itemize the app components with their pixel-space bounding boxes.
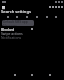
- button[interactable]: Action 4: [60, 5, 63, 8]
- button[interactable]: Tab 4: [45, 15, 49, 19]
- staticText: Search settings: [1, 9, 31, 15]
- staticText: Notifications: [1, 35, 22, 40]
- button[interactable]: Navigate up: [1, 5, 5, 9]
- button[interactable]: Tab 2: [25, 15, 29, 19]
- button[interactable]: Back: [12, 72, 18, 78]
- button[interactable]: Blocked: [1, 27, 15, 32]
- button[interactable]: Tab 3: [35, 15, 39, 19]
- button[interactable]: Action 0: [48, 5, 51, 8]
- button[interactable]: Swipe actions: [1, 31, 23, 36]
- staticText: Swipe actions: [1, 31, 23, 36]
- button[interactable]: Tab 0: [6, 15, 10, 19]
- button[interactable]: Action 3: [57, 5, 60, 8]
- button[interactable]: Action 1: [51, 5, 54, 8]
- button[interactable]: Default SMS app: [2, 20, 34, 26]
- staticText: Messages: [3, 24, 17, 26]
- button[interactable]: Notifications: [1, 35, 22, 40]
- button[interactable]: Tab 1: [15, 15, 19, 19]
- staticText: Default SMS app: [3, 20, 28, 24]
- button[interactable]: Home: [29, 72, 35, 78]
- staticText: Blocked: [1, 27, 15, 32]
- button[interactable]: Action 2: [54, 5, 57, 8]
- button[interactable]: Recents: [47, 72, 53, 78]
- button[interactable]: Tab 5: [54, 15, 58, 19]
